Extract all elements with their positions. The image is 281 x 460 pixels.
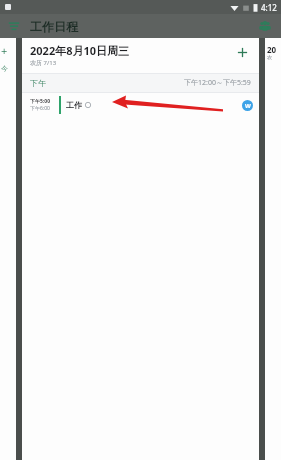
staticText: 下午12:00～下午5:59 xyxy=(184,78,251,88)
staticText: 工作日程 xyxy=(30,19,78,34)
button[interactable]: 2022年8月10日周三 xyxy=(30,43,251,67)
button[interactable]: Add event xyxy=(233,43,251,61)
staticText: 2022年8月10日周三 xyxy=(30,43,130,58)
staticText: + xyxy=(1,43,8,58)
staticText: 20 xyxy=(267,44,277,55)
staticText: 4:12 xyxy=(261,2,277,13)
staticText: 工作 xyxy=(66,100,82,110)
button[interactable]: 今 xyxy=(0,38,16,460)
button[interactable]: Contacts xyxy=(255,16,275,36)
staticText: W xyxy=(245,102,251,110)
staticText: 今 xyxy=(1,64,8,73)
staticText: 农历 7/13 xyxy=(30,59,57,67)
button[interactable]: 20 xyxy=(265,38,281,460)
staticText: 下午5:00 xyxy=(30,98,50,105)
button[interactable]: Menu xyxy=(4,16,24,36)
staticText: 下午 xyxy=(30,78,46,88)
staticText: 下午6:00 xyxy=(30,105,50,112)
staticText: 农 xyxy=(267,54,272,60)
button[interactable]: 下午5:00 xyxy=(22,93,259,117)
